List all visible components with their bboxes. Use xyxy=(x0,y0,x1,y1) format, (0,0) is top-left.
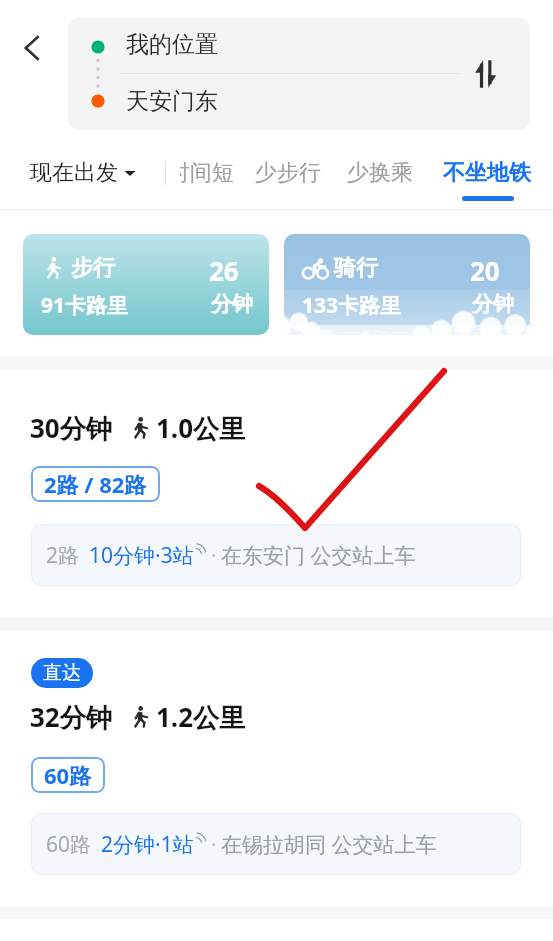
staticText: 天安门东 xyxy=(126,87,218,116)
button[interactable]: 2路 xyxy=(31,524,521,586)
button[interactable]: 少换乘 xyxy=(347,159,413,187)
staticText: 2路 / 82路 xyxy=(44,469,147,499)
staticText: · xyxy=(211,541,217,570)
button[interactable]: 60路 xyxy=(31,757,105,793)
button[interactable]: 不坐地铁 xyxy=(443,159,531,187)
staticText: 步行 xyxy=(71,254,115,282)
button[interactable]: 时间短 xyxy=(180,159,234,187)
button[interactable]: 直达 xyxy=(31,658,93,688)
staticText: · xyxy=(211,830,217,859)
staticText: 2分钟·1站 xyxy=(101,830,194,859)
staticText: 133卡路里 xyxy=(302,291,402,320)
button[interactable]: Swap origin and destination xyxy=(462,50,510,98)
staticText: 现在出发 xyxy=(30,159,118,187)
staticText: 骑行 xyxy=(334,254,378,282)
staticText: 1.2公里 xyxy=(156,699,246,735)
button[interactable]: Back xyxy=(9,25,55,71)
staticText: 32分钟 xyxy=(30,699,112,735)
staticText: 1.0公里 xyxy=(156,410,246,446)
staticText: 20 xyxy=(470,253,500,288)
staticText: 分钟 xyxy=(472,291,514,317)
button[interactable]: 步行 xyxy=(23,234,269,335)
button[interactable]: 少步行 xyxy=(255,159,321,187)
button[interactable]: 60路 xyxy=(31,813,521,875)
button[interactable]: 骑行 xyxy=(284,234,530,335)
staticText: 91卡路里 xyxy=(41,291,129,320)
button[interactable]: 30分钟 xyxy=(0,369,553,618)
button[interactable]: 现在出发 xyxy=(30,149,136,197)
staticText: 2路 xyxy=(46,541,80,570)
staticText: 我的位置 xyxy=(126,30,218,59)
staticText: 26 xyxy=(209,253,239,288)
staticText: 在东安门 公交站上车 xyxy=(221,541,416,570)
staticText: 10分钟·3站 xyxy=(89,541,194,570)
staticText: 分钟 xyxy=(211,291,253,317)
button[interactable]: 直达 xyxy=(0,630,553,907)
staticText: 60路 xyxy=(46,830,92,859)
staticText: 60路 xyxy=(44,760,92,790)
staticText: 直达 xyxy=(43,661,81,685)
button[interactable]: 2路 / 82路 xyxy=(31,466,160,502)
staticText: 30分钟 xyxy=(30,410,112,446)
staticText: 在锡拉胡同 公交站上车 xyxy=(221,830,437,859)
